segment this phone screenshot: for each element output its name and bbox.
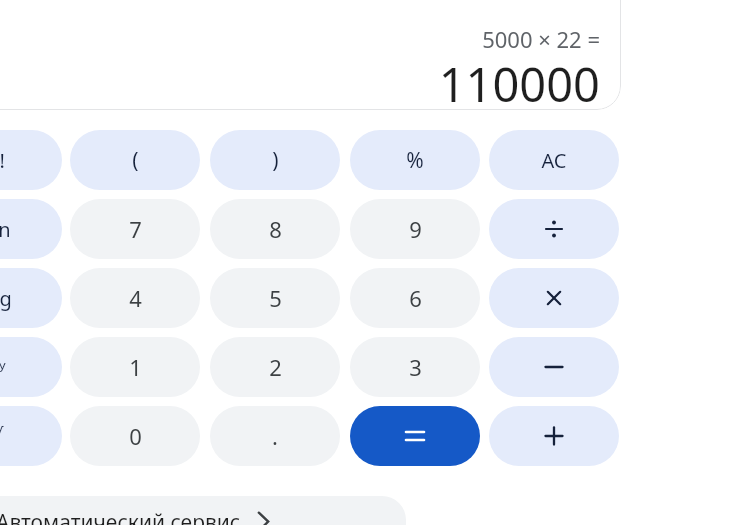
staticText: xʸ [0,354,6,381]
button[interactable]: 4 [70,268,200,328]
staticText: 6 [409,283,422,313]
button[interactable]: 6 [350,268,480,328]
staticText: Автоматический сервис [0,508,241,525]
staticText: 110000 [438,52,600,108]
button[interactable]: Equals [350,406,480,466]
staticText: . [272,421,278,451]
staticText: 8 [269,214,282,244]
staticText: 0 [129,421,142,451]
button[interactable]: Multiply [489,268,619,328]
staticText: x! [0,147,5,174]
button[interactable]: 2 [210,337,340,397]
staticText: AC [541,147,567,174]
button[interactable]: 3 [350,337,480,397]
staticText: 1 [129,352,142,382]
button[interactable]: 5 [210,268,340,328]
staticText: 9 [409,214,422,244]
button[interactable]: AC [489,130,619,190]
button[interactable]: 8 [210,199,340,259]
button[interactable]: √ [0,406,62,466]
button[interactable]: 1 [70,337,200,397]
button[interactable]: % [350,130,480,190]
button[interactable]: log [0,268,62,328]
button[interactable]: . [210,406,340,466]
button[interactable]: sin [0,199,62,259]
staticText: log [0,285,12,312]
button[interactable]: ( [70,130,200,190]
staticText: 2 [269,352,282,382]
staticText: 5000 × 22 = [482,24,600,52]
button[interactable]: 7 [70,199,200,259]
button[interactable]: x! [0,130,62,190]
button[interactable]: 9 [350,199,480,259]
staticText: ( [132,146,139,175]
button[interactable]: 0 [70,406,200,466]
staticText: √ [0,424,4,448]
button[interactable]: ) [210,130,340,190]
other: Open [250,508,276,525]
button[interactable]: xʸ [0,337,62,397]
button[interactable]: Автоматический сервис [0,496,406,525]
staticText: 5 [269,283,282,313]
staticText: 4 [129,283,142,313]
button[interactable]: Divide [489,199,619,259]
staticText: ) [272,146,279,175]
staticText: sin [0,216,11,243]
staticText: 7 [129,214,142,244]
staticText: % [406,146,424,175]
button[interactable]: Plus [489,406,619,466]
button[interactable]: Minus [489,337,619,397]
staticText: 3 [409,352,422,382]
